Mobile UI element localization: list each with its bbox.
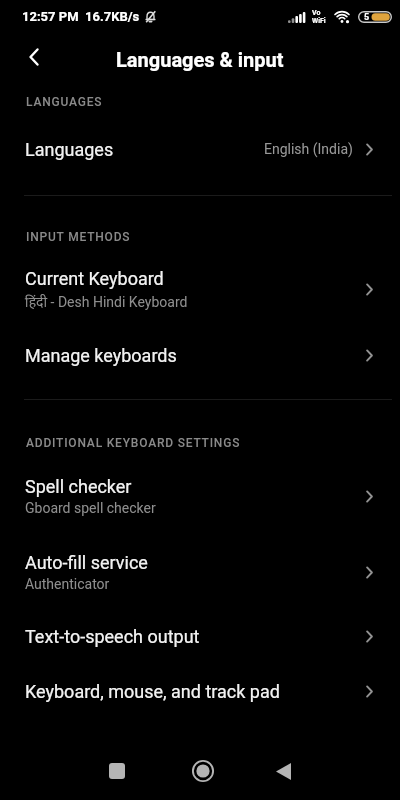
staticText: Languages: [25, 139, 114, 160]
staticText: ADDITIONAL KEYBOARD SETTINGS: [26, 436, 241, 450]
staticText: Text-to-speech output: [25, 626, 200, 647]
button[interactable]: [20, 43, 48, 71]
staticText: LANGUAGES: [26, 95, 103, 109]
staticText: Vo: [312, 9, 321, 17]
staticText: 5: [364, 12, 370, 23]
staticText: Spell checker: [25, 476, 132, 497]
button[interactable]: Text-to-speech output: [0, 607, 400, 665]
staticText: Authenticator: [25, 576, 110, 592]
staticText: हिंदी - Desh Hindi Keyboard: [25, 292, 188, 311]
button[interactable]: [255, 743, 311, 799]
staticText: Keyboard, mouse, and track pad: [25, 681, 280, 702]
staticText: Current Keyboard: [25, 268, 164, 289]
button[interactable]: [175, 743, 231, 799]
button[interactable]: Auto-fill service: [0, 537, 400, 607]
staticText: 12:57 PM: [22, 9, 79, 24]
staticText: Auto-fill service: [25, 552, 148, 573]
staticText: Languages & input: [116, 48, 284, 71]
staticText: Gboard spell checker: [25, 500, 156, 516]
staticText: Manage keyboards: [25, 345, 177, 366]
staticText: INPUT METHODS: [26, 230, 131, 244]
button[interactable]: Manage keyboards: [0, 329, 400, 381]
staticText: English (India): [264, 141, 353, 157]
staticText: WiFi: [312, 17, 326, 25]
button[interactable]: Spell checker: [0, 455, 400, 537]
button[interactable]: [89, 743, 145, 799]
staticText: 16.7KB/s: [85, 9, 140, 24]
button[interactable]: Keyboard, mouse, and track pad: [0, 665, 400, 717]
button[interactable]: Current Keyboard: [0, 249, 400, 329]
button[interactable]: Languages: [0, 114, 400, 184]
